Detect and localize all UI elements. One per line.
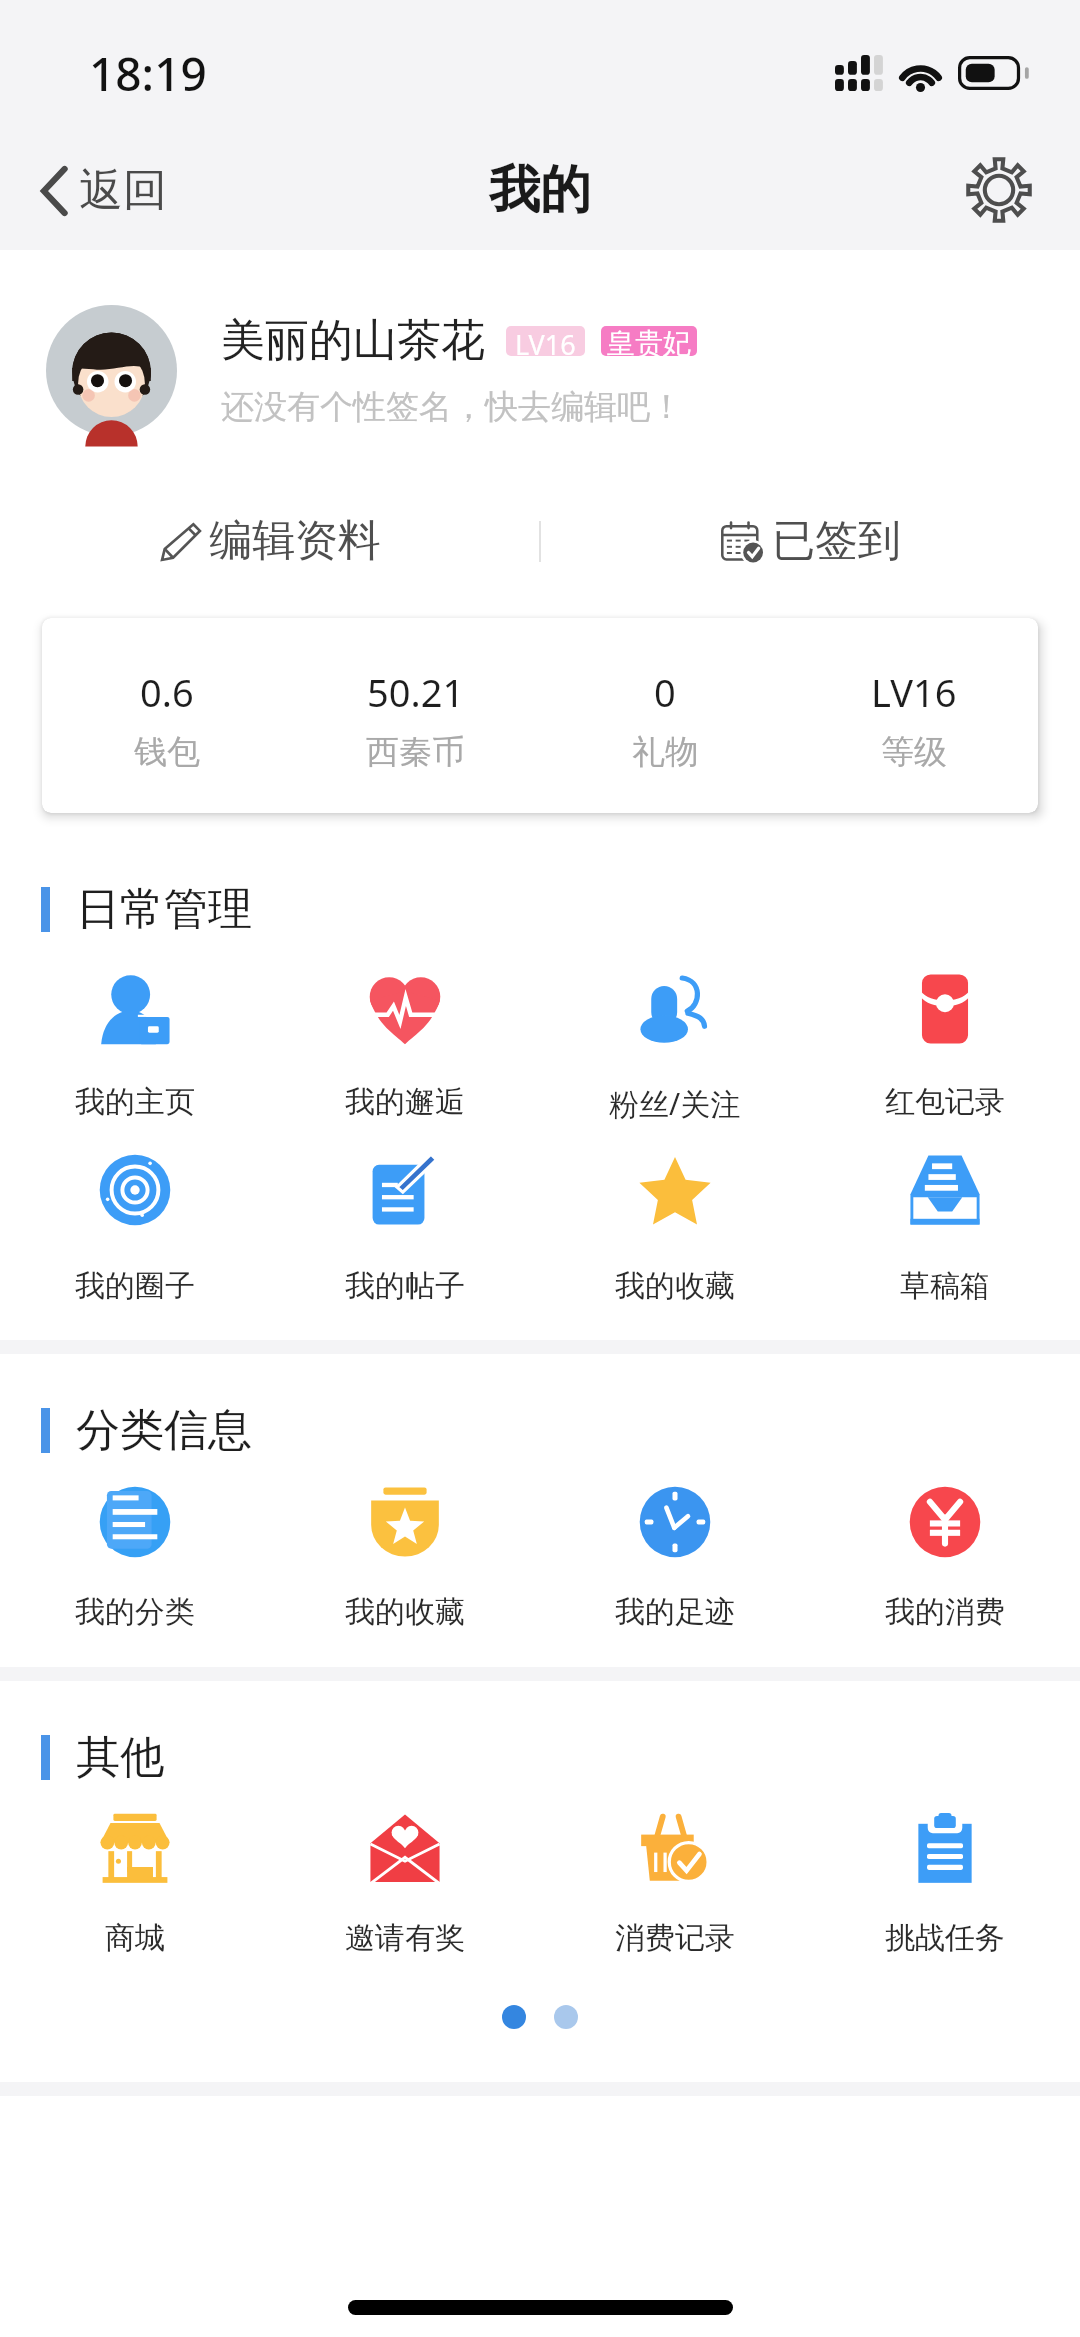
button[interactable]: 已签到 <box>541 494 1080 588</box>
button[interactable]: 我的消费 <box>810 1486 1080 1631</box>
staticText: 已签到 <box>772 514 901 568</box>
button[interactable]: 我的主页 <box>0 973 270 1121</box>
staticText: 18:19 <box>89 42 207 105</box>
button[interactable]: 编辑资料 <box>0 494 539 588</box>
staticText: 我的 <box>489 158 591 222</box>
button[interactable]: 我的邂逅 <box>270 973 540 1121</box>
button[interactable]: LV16 <box>789 666 1038 773</box>
staticText: 我的圈子 <box>75 1267 195 1305</box>
button[interactable]: 红包记录 <box>810 973 1080 1121</box>
button[interactable]: 我的分类 <box>0 1486 270 1631</box>
staticText: 我的主页 <box>75 1083 195 1121</box>
button[interactable]: 返回 <box>0 143 187 238</box>
staticText: 美丽的山茶花 <box>221 313 485 368</box>
button[interactable]: 0.6 <box>42 666 291 773</box>
staticText: 0 <box>654 666 676 718</box>
button[interactable]: 我的收藏 <box>270 1486 540 1631</box>
button[interactable]: 草稿箱 <box>810 1154 1080 1305</box>
button[interactable]: 我的圈子 <box>0 1154 270 1305</box>
staticText: 分类信息 <box>76 1403 252 1458</box>
staticText: LV16 <box>515 326 576 356</box>
staticText: 商城 <box>105 1919 165 1957</box>
staticText: 钱包 <box>134 731 200 773</box>
staticText: LV16 <box>871 666 957 718</box>
staticText: 编辑资料 <box>209 514 381 568</box>
staticText: 皇贵妃 <box>607 326 691 356</box>
staticText: 我的收藏 <box>615 1267 735 1305</box>
staticText: 我的帖子 <box>345 1267 465 1305</box>
button[interactable]: 美丽的山茶花 <box>0 305 1080 436</box>
button[interactable]: 消费记录 <box>540 1813 810 1957</box>
staticText: 0.6 <box>140 666 194 718</box>
staticText: 其他 <box>76 1730 164 1785</box>
staticText: 我的消费 <box>885 1593 1005 1631</box>
staticText: 粉丝/关注 <box>609 1083 741 1124</box>
button[interactable]: Settings <box>936 137 1080 243</box>
button[interactable]: 0 <box>540 666 789 773</box>
button[interactable]: 50.21 <box>291 666 540 773</box>
staticText: 草稿箱 <box>900 1267 990 1305</box>
button[interactable]: 商城 <box>0 1813 270 1957</box>
button[interactable]: 邀请有奖 <box>270 1813 540 1957</box>
staticText: 礼物 <box>632 731 698 773</box>
staticText: 邀请有奖 <box>345 1919 465 1957</box>
button[interactable]: 我的足迹 <box>540 1486 810 1631</box>
staticText: 等级 <box>881 731 947 773</box>
staticText: 我的分类 <box>75 1593 195 1631</box>
staticText: 返回 <box>79 163 167 218</box>
staticText: 消费记录 <box>615 1919 735 1957</box>
button[interactable]: 我的收藏 <box>540 1154 810 1305</box>
staticText: 50.21 <box>367 666 465 718</box>
staticText: 还没有个性签名，快去编辑吧！ <box>221 386 683 428</box>
staticText: 我的邂逅 <box>345 1083 465 1121</box>
staticText: 日常管理 <box>76 882 252 937</box>
staticText: 我的收藏 <box>345 1593 465 1631</box>
staticText: 我的足迹 <box>615 1593 735 1631</box>
staticText: 红包记录 <box>885 1083 1005 1121</box>
button[interactable]: 粉丝/关注 <box>540 973 810 1124</box>
button[interactable]: 我的帖子 <box>270 1154 540 1305</box>
staticText: 西秦币 <box>366 731 465 773</box>
button[interactable]: 挑战任务 <box>810 1813 1080 1957</box>
staticText: 挑战任务 <box>885 1919 1005 1957</box>
